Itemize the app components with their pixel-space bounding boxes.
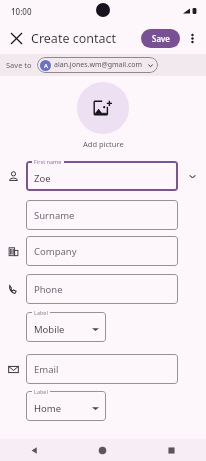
button[interactable]: Mobile (26, 312, 106, 342)
staticText: Company (34, 245, 77, 258)
button[interactable]: Save (141, 29, 180, 48)
button[interactable]: Email (26, 354, 178, 384)
staticText: First name (34, 158, 62, 165)
button[interactable]: Close (5, 27, 27, 49)
button[interactable]: More options (182, 28, 202, 48)
button[interactable]: Add picture (77, 82, 129, 134)
button[interactable]: Phone (26, 274, 178, 304)
staticText: Email (34, 363, 59, 376)
staticText: Save to (6, 60, 32, 70)
staticText: Zoe (34, 172, 51, 185)
button[interactable]: Zoe (26, 161, 178, 191)
staticText: A (44, 62, 48, 70)
staticText: Mobile (34, 323, 92, 336)
button[interactable]: Expand name fields (178, 161, 206, 191)
button[interactable]: Home (26, 391, 106, 421)
button[interactable]: Surname (26, 200, 178, 230)
staticText: Label (34, 309, 48, 316)
button[interactable]: Add picture (83, 139, 124, 149)
staticText: Phone (34, 283, 63, 296)
staticText: Home (34, 402, 92, 415)
staticText: Surname (34, 209, 75, 222)
button[interactable]: Home (68, 439, 137, 461)
button[interactable]: Back (0, 439, 68, 461)
staticText: Label (34, 388, 48, 395)
staticText: Create contact (31, 30, 117, 47)
button[interactable]: Company (26, 236, 178, 266)
staticText: Save (152, 33, 170, 44)
staticText: alan.jones.wm@gmail.com (54, 60, 143, 70)
button[interactable]: A (37, 57, 158, 73)
button[interactable]: Recent apps (137, 439, 206, 461)
staticText: 10:00 (11, 6, 32, 17)
